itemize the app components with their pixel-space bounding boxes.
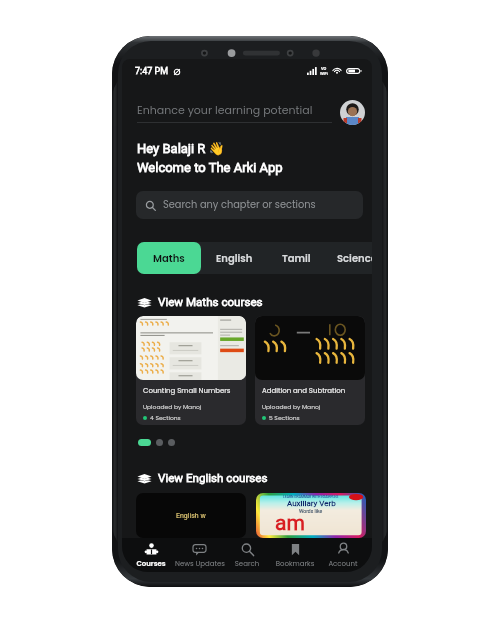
staticText: View Maths courses [158, 295, 263, 309]
staticText: Welcome to The Arki App [137, 160, 283, 175]
staticText: Search [223, 559, 271, 569]
button[interactable]: Profile [340, 100, 365, 125]
staticText: Words like [299, 508, 323, 514]
staticText: Enhance your learning potential [137, 102, 313, 117]
staticText: Counting Small Numbers [143, 386, 231, 396]
staticText: Science [337, 251, 372, 265]
staticText: WiFi [320, 71, 328, 76]
button[interactable]: English [201, 242, 268, 274]
staticText: Uploaded by Manoj [143, 403, 202, 411]
staticText: English w [176, 512, 206, 520]
button[interactable]: Search [223, 538, 271, 572]
staticText: 4 Sections [150, 414, 181, 422]
button[interactable]: English w [136, 493, 246, 538]
staticText: Addition and Subtration [262, 386, 346, 396]
staticText: Maths [153, 251, 185, 265]
button[interactable]: Courses [127, 538, 175, 572]
staticText: LEARN GRAMMAR WITH EXAMPLES [283, 495, 339, 499]
staticText: 5 Sections [269, 414, 300, 422]
button[interactable]: Maths [137, 242, 201, 274]
button[interactable]: Counting Small Numbers [136, 316, 246, 425]
staticText: Search any chapter or sections [163, 198, 316, 212]
staticText: Hey Balaji R 👋 [137, 141, 225, 156]
staticText: Courses [127, 559, 175, 569]
staticText: Auxiliary Verb [287, 499, 336, 508]
button[interactable]: Tamil [268, 242, 325, 274]
button[interactable]: Search any chapter or sections [136, 191, 363, 219]
staticText: Account [319, 559, 367, 569]
staticText: Tamil [282, 251, 311, 265]
staticText: View English courses [158, 471, 268, 485]
staticText: am [275, 511, 305, 536]
staticText: VO [321, 66, 327, 71]
button[interactable]: Bookmarks [271, 538, 319, 572]
staticText: News Updates [175, 559, 223, 569]
staticText: English [216, 251, 253, 265]
button[interactable]: News Updates [175, 538, 223, 572]
button[interactable]: Addition and Subtration [255, 316, 365, 425]
staticText: Uploaded by Manoj [262, 403, 321, 411]
staticText: Bookmarks [271, 559, 319, 569]
button[interactable]: Science [325, 242, 372, 274]
button[interactable]: LEARN GRAMMAR WITH EXAMPLES [256, 493, 366, 538]
button[interactable]: Account [319, 538, 367, 572]
staticText: 7:47 PM [135, 66, 169, 77]
